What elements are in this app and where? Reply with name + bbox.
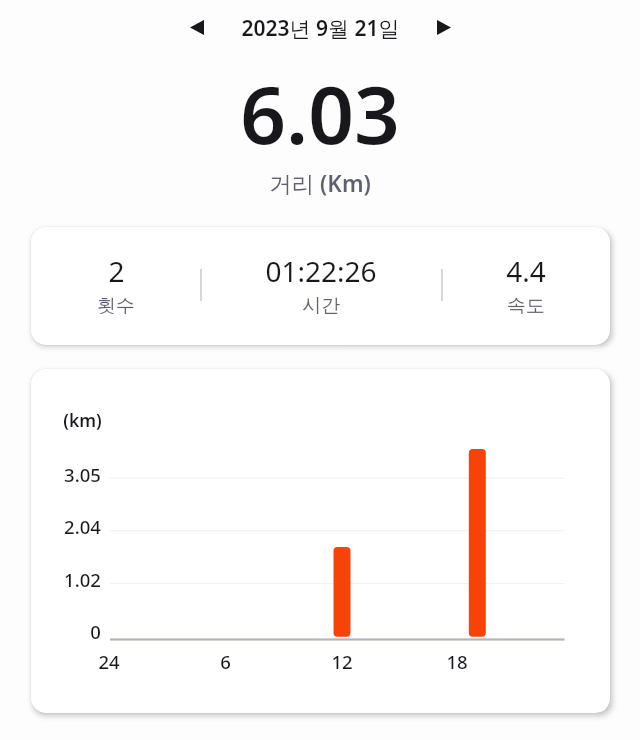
staticText: 거리 (Km) (269, 168, 371, 199)
staticText: 01:22:26 (265, 252, 377, 290)
staticText: 시간 (302, 294, 340, 318)
button[interactable]: Previous day (179, 10, 214, 45)
staticText: 6 (220, 649, 231, 674)
staticText: 12 (331, 649, 353, 674)
staticText: 횟수 (97, 294, 135, 318)
staticText: 3.05 (64, 462, 101, 487)
staticText: 0 (90, 619, 101, 644)
staticText: 2 (108, 252, 125, 290)
button[interactable]: 2 (46, 245, 186, 325)
button[interactable]: 4.4 (456, 245, 596, 325)
staticText: (km) (63, 408, 102, 432)
staticText: 2.04 (64, 514, 101, 539)
staticText: 6.03 (240, 58, 400, 167)
staticText: 2023년 9월 21일 (241, 14, 400, 43)
staticText: 4.4 (506, 252, 546, 290)
button[interactable]: Next day (426, 10, 461, 45)
staticText: 속도 (507, 294, 545, 318)
staticText: 1.02 (64, 567, 101, 592)
staticText: 18 (446, 649, 468, 674)
button[interactable]: 01:22:26 (231, 245, 411, 325)
staticText: 24 (98, 649, 120, 674)
